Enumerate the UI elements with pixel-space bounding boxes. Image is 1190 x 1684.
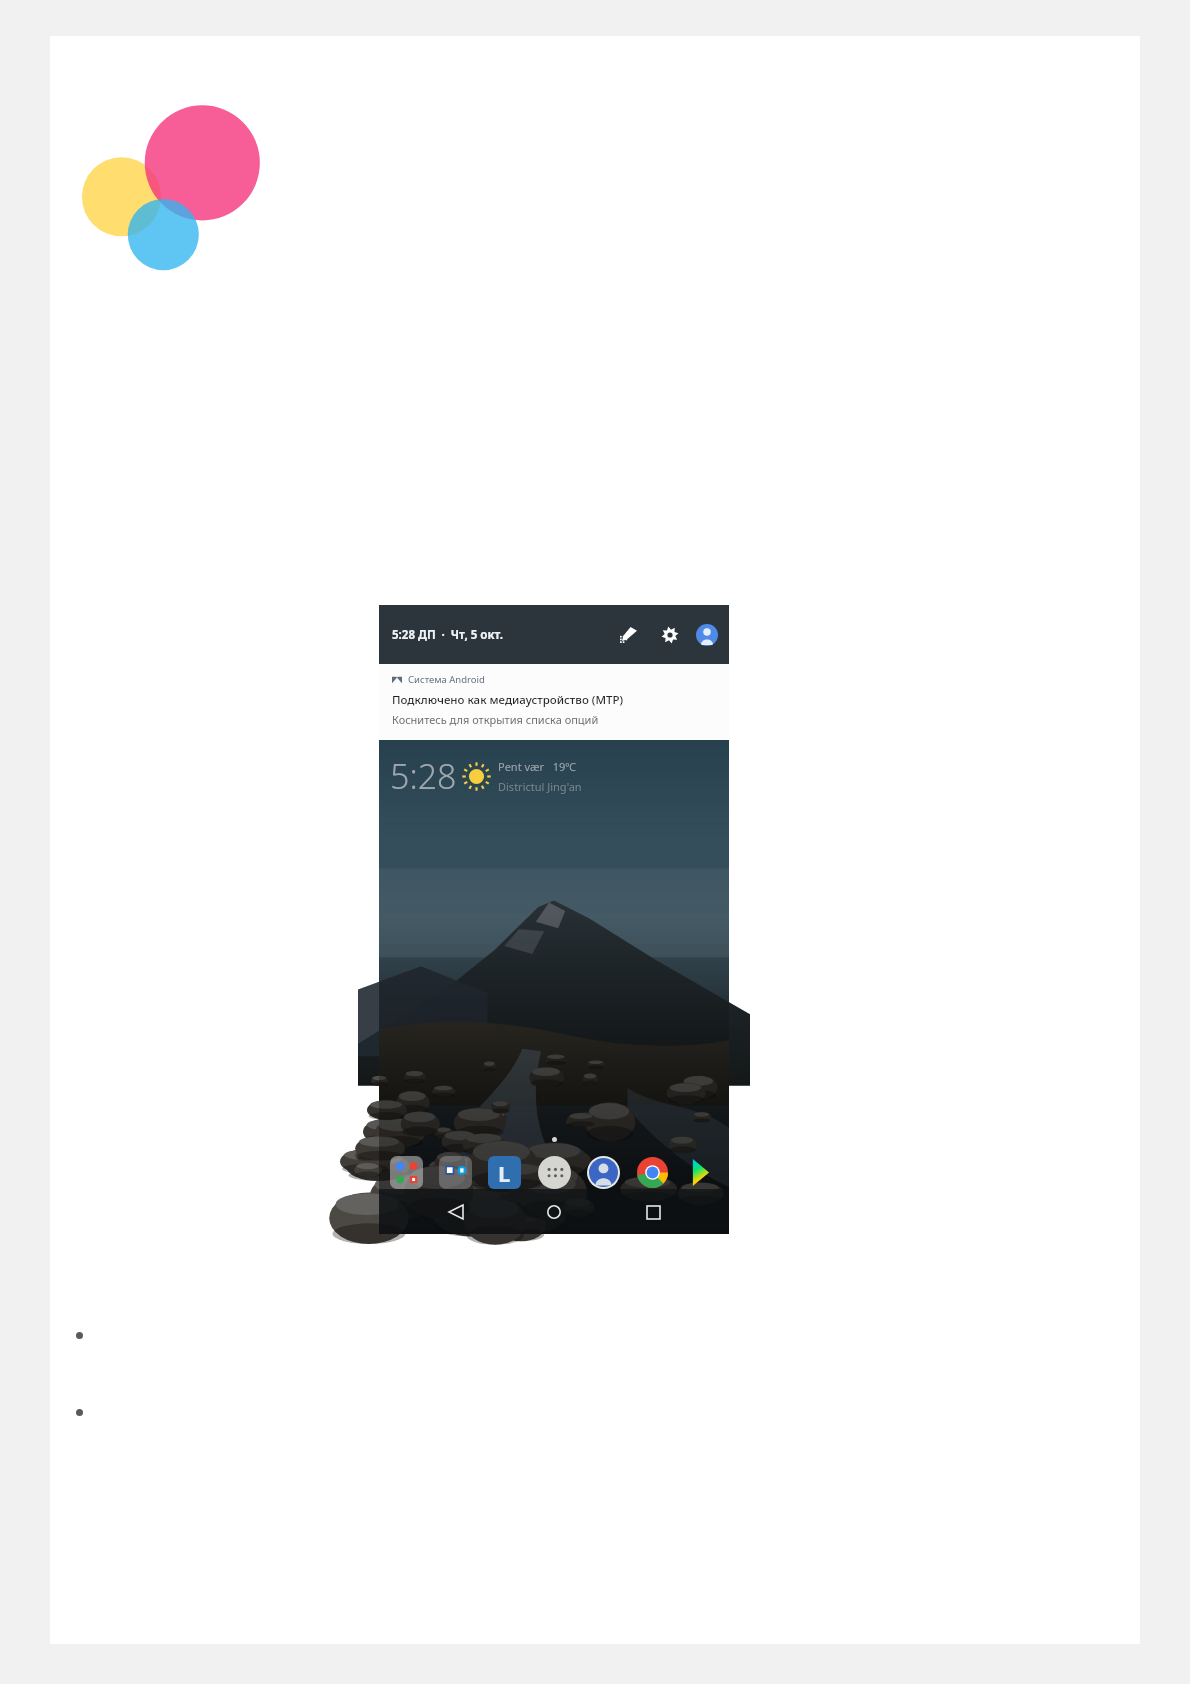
staticText: L bbox=[498, 1158, 511, 1188]
button[interactable]: Settings bbox=[655, 620, 685, 650]
button[interactable]: Lenovo app bbox=[488, 1156, 521, 1189]
staticText: Система Android bbox=[408, 673, 485, 686]
staticText: 5:28 ДП · Чт, 5 окт. bbox=[392, 627, 504, 643]
staticText: Pent vær 19℃ bbox=[498, 759, 577, 774]
button[interactable]: Home bbox=[532, 1190, 576, 1234]
button[interactable]: Система Android bbox=[379, 664, 729, 740]
button[interactable]: Chrome bbox=[636, 1156, 669, 1189]
button[interactable]: Play Store bbox=[685, 1156, 718, 1189]
button[interactable]: Google folder bbox=[390, 1156, 423, 1189]
button[interactable]: User account bbox=[696, 624, 718, 646]
staticText: Districtul Jing'an bbox=[498, 779, 582, 794]
button[interactable]: Back bbox=[434, 1190, 478, 1234]
button[interactable]: Apps bbox=[538, 1156, 571, 1189]
button[interactable]: Recent apps bbox=[631, 1190, 675, 1234]
staticText: 5:28 bbox=[390, 753, 457, 799]
button[interactable]: Contacts bbox=[587, 1156, 620, 1189]
staticText: Подключено как медиаустройство (MTP) bbox=[392, 692, 624, 708]
button[interactable]: Office folder bbox=[439, 1156, 472, 1189]
button[interactable]: 5:28 bbox=[390, 753, 729, 799]
button[interactable]: Edit quick settings bbox=[613, 620, 643, 650]
staticText: Коснитесь для открытия списка опций bbox=[392, 712, 599, 727]
